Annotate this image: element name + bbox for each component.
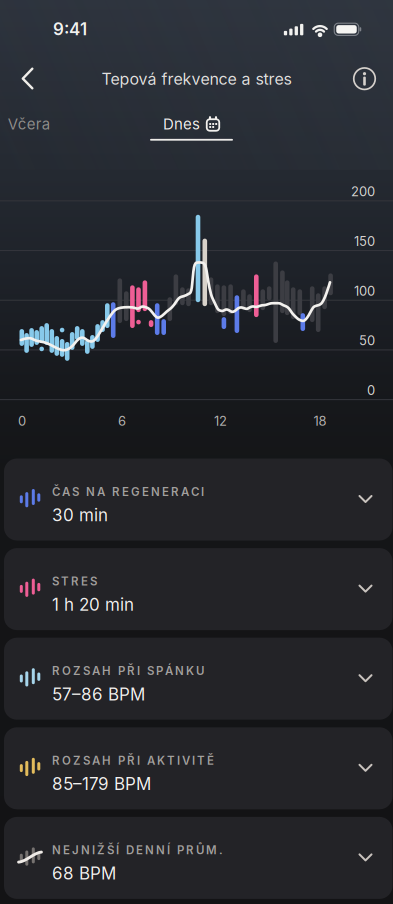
button[interactable]: N E J N I Ž Š Í D E N N Í P R Ů M . xyxy=(4,817,392,899)
button[interactable]: S T R E S xyxy=(4,548,392,630)
staticText: 1 h 20 min xyxy=(52,594,134,615)
staticText: 68 BPM xyxy=(52,863,116,884)
staticText: 6 xyxy=(118,413,126,429)
staticText: 100 xyxy=(354,283,375,299)
staticText: S T R E S xyxy=(52,574,97,588)
staticText: 0 xyxy=(18,413,26,429)
staticText: 85–179 BPM xyxy=(52,773,151,794)
staticText: 18 xyxy=(313,413,326,429)
staticText: N E J N I Ž Š Í D E N N Í P R Ů M . xyxy=(52,843,223,857)
button[interactable]: Info xyxy=(346,61,382,97)
staticText: 0 xyxy=(367,382,375,398)
staticText: R O Z S A H P Ř I A K T I V I T Ě xyxy=(52,753,214,767)
staticText: Dnes xyxy=(163,115,200,133)
button[interactable]: R O Z S A H P Ř I A K T I V I T Ě xyxy=(4,727,392,809)
staticText: Včera xyxy=(8,115,50,133)
button[interactable]: Back xyxy=(5,60,49,96)
staticText: 30 min xyxy=(52,505,108,525)
button[interactable]: Včera xyxy=(0,107,64,141)
staticText: 150 xyxy=(354,233,375,249)
button[interactable]: R O Z S A H P Ř I S P Á N K U xyxy=(4,638,392,720)
staticText: Tepová frekvence a stres xyxy=(101,69,291,89)
staticText: 200 xyxy=(351,184,375,199)
staticText: R O Z S A H P Ř I S P Á N K U xyxy=(52,664,204,678)
staticText: 50 xyxy=(359,333,375,348)
button[interactable]: Dnes xyxy=(163,107,220,141)
staticText: Č A S N A R E G E N E R A C I xyxy=(52,485,204,499)
button[interactable]: Č A S N A R E G E N E R A C I xyxy=(4,458,392,540)
staticText: 12 xyxy=(214,413,227,429)
staticText: 57–86 BPM xyxy=(52,684,145,704)
staticText: 9:41 xyxy=(53,19,87,39)
